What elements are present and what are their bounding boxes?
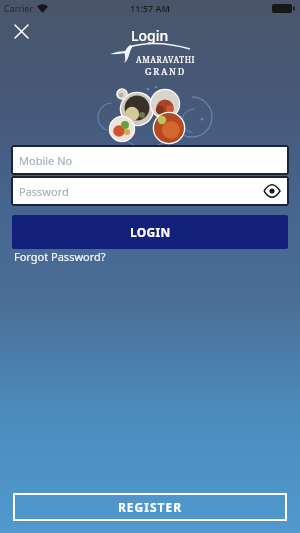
button[interactable] [15,25,28,38]
button[interactable]: REGISTER [13,493,287,521]
staticText: Login [131,26,169,45]
button[interactable]: LOGIN [12,215,288,249]
button[interactable]: Forgot Password? [14,249,106,264]
staticText: AMARAVATHI [136,54,196,65]
staticText: Mobile No [19,153,73,168]
staticText: Carrier [4,2,34,14]
button[interactable]: Mobile No [11,145,289,175]
staticText: GRAND [145,65,187,77]
staticText: 11:57 AM [130,2,170,14]
staticText: LOGIN [130,224,171,240]
staticText: Password [19,184,69,199]
button[interactable]: Password [11,176,289,206]
staticText: REGISTER [118,499,183,515]
